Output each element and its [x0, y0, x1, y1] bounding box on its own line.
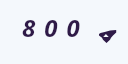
staticText: 800: [22, 11, 89, 44]
button[interactable]: 800: [0, 0, 128, 64]
other: Heart: [99, 30, 117, 44]
